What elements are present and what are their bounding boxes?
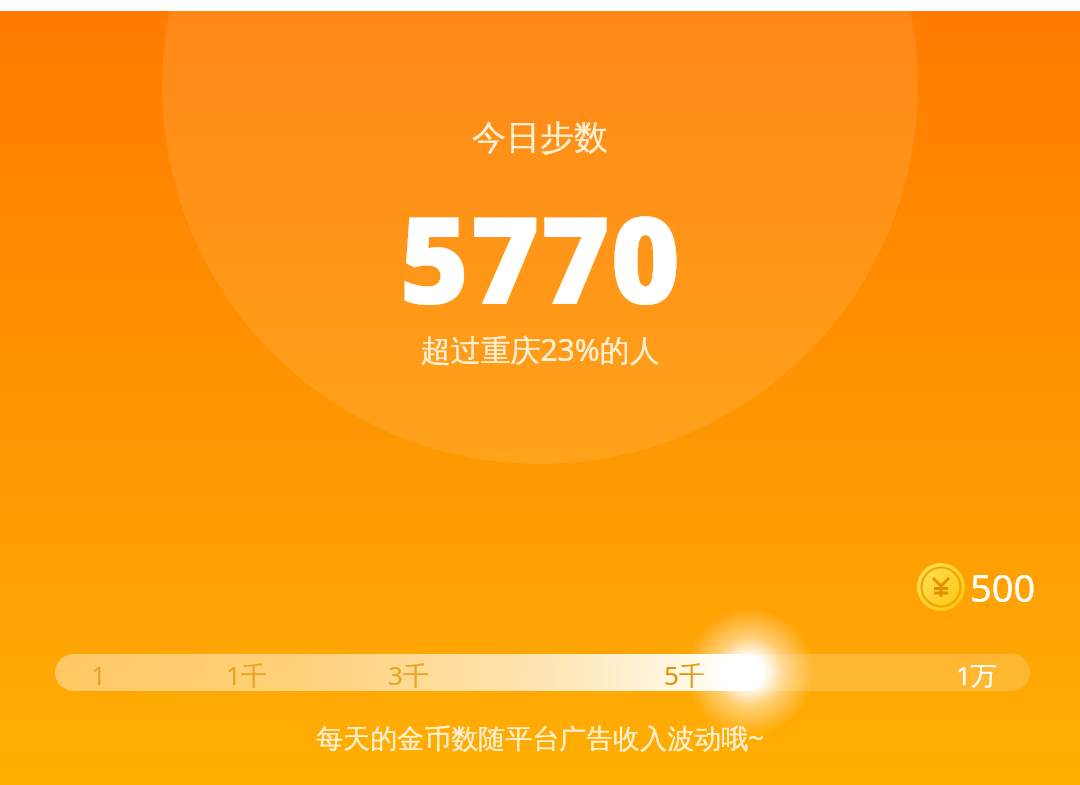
staticText: 今日步数 <box>472 116 608 159</box>
staticText: 1千 <box>226 657 267 693</box>
staticText: 1 <box>91 657 106 692</box>
staticText: 每天的金币数随平台广告收入波动哦~ <box>316 719 764 756</box>
staticText: 5770 <box>399 176 681 339</box>
staticText: 1万 <box>956 657 997 693</box>
button[interactable]: Coin balance 500 <box>908 556 1034 618</box>
staticText: 5千 <box>664 657 705 693</box>
staticText: 500 <box>970 561 1036 613</box>
button[interactable]: Daily step progress, 5770 of 10000 <box>55 654 1030 691</box>
staticText: 3千 <box>388 657 429 693</box>
staticText: 超过重庆23%的人 <box>420 329 660 370</box>
